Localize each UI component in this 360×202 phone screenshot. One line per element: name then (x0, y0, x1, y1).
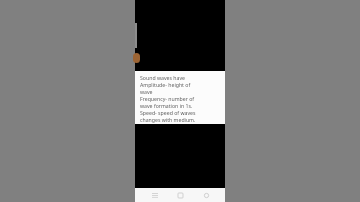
staticText: Sound waves have (140, 74, 185, 81)
staticText: Amplitude- height of (140, 81, 191, 88)
button[interactable]: Home (174, 189, 186, 201)
button[interactable]: Back (200, 189, 212, 201)
button[interactable]: Sound waves have (135, 71, 225, 124)
staticText: wave formation in 1s. (140, 102, 193, 109)
staticText: Speed- speed of waves (140, 109, 196, 116)
button[interactable]: Recent apps (149, 189, 161, 201)
staticText: changes with medium. (140, 116, 196, 123)
staticText: Frequency- number of (140, 95, 195, 102)
staticText: wave (140, 88, 153, 95)
